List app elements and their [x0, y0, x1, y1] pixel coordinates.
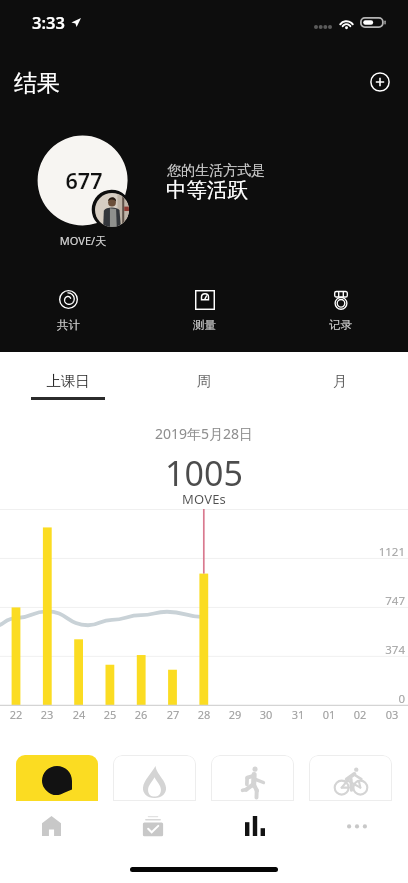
staticText: 1005 — [0, 450, 408, 496]
staticText: 记录 — [329, 318, 352, 332]
button[interactable]: Archive — [102, 813, 204, 863]
staticText: 31 — [284, 707, 312, 722]
staticText: 24 — [65, 707, 93, 722]
staticText: 中等活跃 — [166, 177, 248, 203]
staticText: 27 — [159, 707, 187, 722]
staticText: 结果 — [14, 69, 60, 98]
staticText: 677 — [39, 166, 129, 195]
staticText: 2019年5月28日 — [0, 424, 408, 443]
button[interactable]: More — [306, 813, 408, 863]
staticText: 0 — [0, 691, 405, 707]
staticText: 共计 — [57, 318, 80, 332]
staticText: 测量 — [193, 318, 216, 332]
button[interactable]: 上课日 — [0, 352, 136, 404]
staticText: 1121 — [0, 544, 405, 560]
button[interactable]: 月 — [272, 352, 408, 404]
staticText: 3:33 — [32, 11, 65, 33]
staticText: 月 — [272, 372, 408, 390]
staticText: 您的生活方式是 — [167, 162, 265, 180]
staticText: 28 — [190, 707, 218, 722]
staticText: 23 — [33, 707, 61, 722]
staticText: MOVEs — [0, 490, 408, 508]
staticText: 周 — [136, 372, 272, 390]
staticText: 30 — [252, 707, 280, 722]
staticText: 374 — [0, 642, 405, 658]
staticText: 02 — [346, 707, 374, 722]
staticText: 747 — [0, 593, 405, 609]
button[interactable]: Cycle — [309, 755, 392, 801]
button[interactable]: 测量 — [136, 287, 272, 334]
button[interactable]: Move — [16, 755, 98, 801]
staticText: 03 — [378, 707, 406, 722]
button[interactable]: Calories — [113, 755, 196, 801]
button[interactable]: Add — [366, 68, 394, 96]
button[interactable]: 记录 — [272, 287, 408, 334]
button[interactable]: Run — [211, 755, 294, 801]
button[interactable]: Home — [0, 813, 102, 863]
button[interactable]: 周 — [136, 352, 272, 404]
button[interactable]: Statistics — [204, 813, 306, 863]
staticText: 01 — [315, 707, 343, 722]
button[interactable]: 共计 — [0, 287, 136, 334]
staticText: 25 — [96, 707, 124, 722]
staticText: 上课日 — [0, 372, 136, 390]
staticText: 29 — [221, 707, 249, 722]
staticText: 26 — [127, 707, 155, 722]
staticText: 22 — [2, 707, 30, 722]
staticText: MOVE/天 — [38, 233, 128, 248]
